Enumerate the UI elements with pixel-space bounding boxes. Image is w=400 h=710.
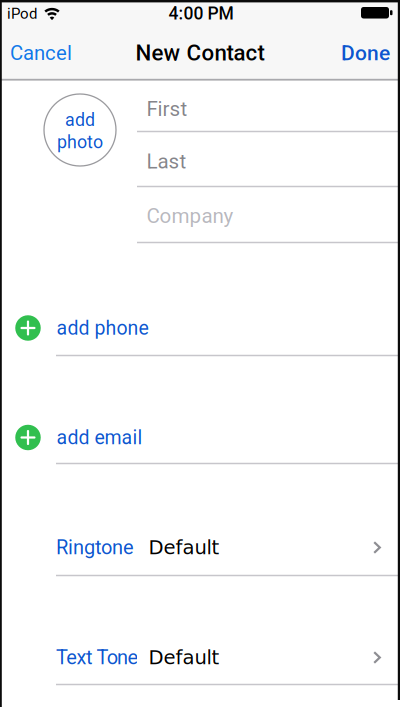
staticText: iPod [7, 5, 37, 22]
staticText: Ringtone [56, 536, 134, 559]
staticText: New Contact [135, 40, 264, 66]
button[interactable]: add photo [43, 93, 117, 167]
staticText: photo [57, 132, 103, 153]
button[interactable]: Cancel [0, 25, 72, 80]
button[interactable]: First [0, 84, 400, 134]
staticText: add [65, 109, 95, 130]
staticText: add phone [56, 317, 148, 339]
staticText: add email [56, 426, 142, 449]
staticText: 4:00 PM [168, 3, 233, 24]
staticText: Default [148, 536, 219, 559]
button[interactable]: add phone [0, 300, 400, 355]
staticText: Text Tone [56, 646, 138, 669]
staticText: Default [148, 646, 219, 669]
button[interactable]: Last [0, 136, 400, 186]
staticText: Cancel [10, 41, 72, 65]
button[interactable]: Company [0, 191, 400, 241]
button[interactable]: Done [341, 25, 400, 80]
button[interactable]: add email [0, 410, 400, 465]
staticText: Last [146, 149, 186, 173]
staticText: First [146, 97, 187, 121]
button[interactable]: Ringtone [0, 520, 400, 575]
staticText: Company [146, 204, 233, 228]
staticText: Done [341, 41, 390, 65]
button[interactable]: Text Tone [0, 630, 400, 685]
